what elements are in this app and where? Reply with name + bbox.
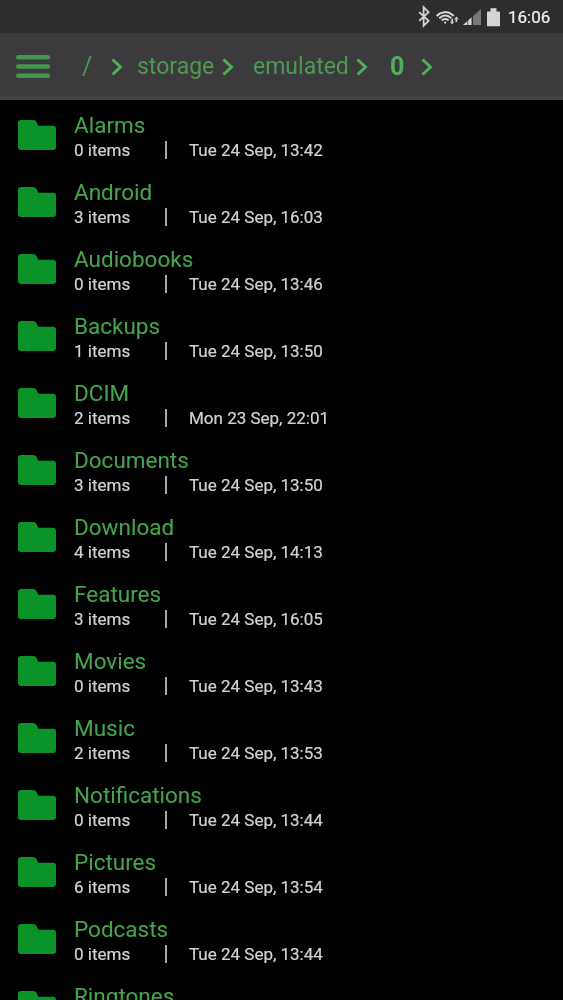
staticText: 2 items: [74, 408, 131, 428]
button[interactable]: Download: [0, 503, 563, 570]
button[interactable]: 0: [390, 52, 405, 81]
staticText: Tue 24 Sep, 13:43: [189, 676, 323, 696]
staticText: Backups: [74, 313, 161, 339]
staticText: 0 items: [74, 140, 131, 160]
staticText: Podcasts: [74, 916, 169, 942]
button[interactable]: Backups: [0, 302, 563, 369]
staticText: DCIM: [74, 380, 130, 406]
staticText: Tue 24 Sep, 13:50: [189, 475, 323, 495]
button[interactable]: Podcasts: [0, 905, 563, 972]
staticText: Tue 24 Sep, 13:50: [189, 341, 323, 361]
staticText: Tue 24 Sep, 16:03: [189, 207, 323, 227]
staticText: 0 items: [74, 810, 131, 830]
staticText: Tue 24 Sep, 13:46: [189, 274, 323, 294]
button[interactable]: Audiobooks: [0, 235, 563, 302]
staticText: Tue 24 Sep, 13:44: [189, 944, 323, 964]
staticText: Alarms: [74, 112, 146, 138]
staticText: 3 items: [74, 609, 131, 629]
button[interactable]: Notifications: [0, 771, 563, 838]
staticText: Tue 24 Sep, 13:42: [189, 140, 323, 160]
staticText: 6 items: [74, 877, 131, 897]
staticText: Download: [74, 514, 175, 540]
staticText: 3 items: [74, 475, 131, 495]
staticText: 4 items: [74, 542, 131, 562]
button[interactable]: Music: [0, 704, 563, 771]
staticText: Android: [74, 179, 153, 205]
staticText: 1 items: [74, 341, 131, 361]
staticText: Movies: [74, 648, 147, 674]
button[interactable]: Pictures: [0, 838, 563, 905]
button[interactable]: Alarms: [0, 101, 563, 168]
staticText: 3 items: [74, 207, 131, 227]
staticText: 0 items: [74, 676, 131, 696]
staticText: Mon 23 Sep, 22:01: [189, 408, 330, 428]
staticText: 0 items: [74, 944, 131, 964]
staticText: Tue 24 Sep, 13:53: [189, 743, 323, 763]
button[interactable]: Features: [0, 570, 563, 637]
button[interactable]: Ringtones: [0, 972, 563, 1000]
staticText: 16:06: [508, 7, 551, 27]
staticText: Features: [74, 581, 162, 607]
staticText: 0 items: [74, 274, 131, 294]
staticText: Audiobooks: [74, 246, 194, 272]
staticText: Ringtones: [74, 983, 175, 1000]
staticText: Documents: [74, 447, 189, 473]
staticText: Tue 24 Sep, 13:54: [189, 877, 323, 897]
button[interactable]: emulated: [253, 53, 349, 80]
button[interactable]: Movies: [0, 637, 563, 704]
button[interactable]: /: [82, 52, 93, 81]
button[interactable]: Android: [0, 168, 563, 235]
staticText: Tue 24 Sep, 14:13: [189, 542, 323, 562]
button[interactable]: DCIM: [0, 369, 563, 436]
button[interactable]: Documents: [0, 436, 563, 503]
button[interactable]: Menu: [0, 33, 66, 100]
staticText: Notifications: [74, 782, 202, 808]
staticText: Tue 24 Sep, 13:44: [189, 810, 323, 830]
staticText: Pictures: [74, 849, 157, 875]
button[interactable]: storage: [137, 53, 215, 80]
staticText: Tue 24 Sep, 16:05: [189, 609, 323, 629]
staticText: 2 items: [74, 743, 131, 763]
staticText: Music: [74, 715, 135, 741]
